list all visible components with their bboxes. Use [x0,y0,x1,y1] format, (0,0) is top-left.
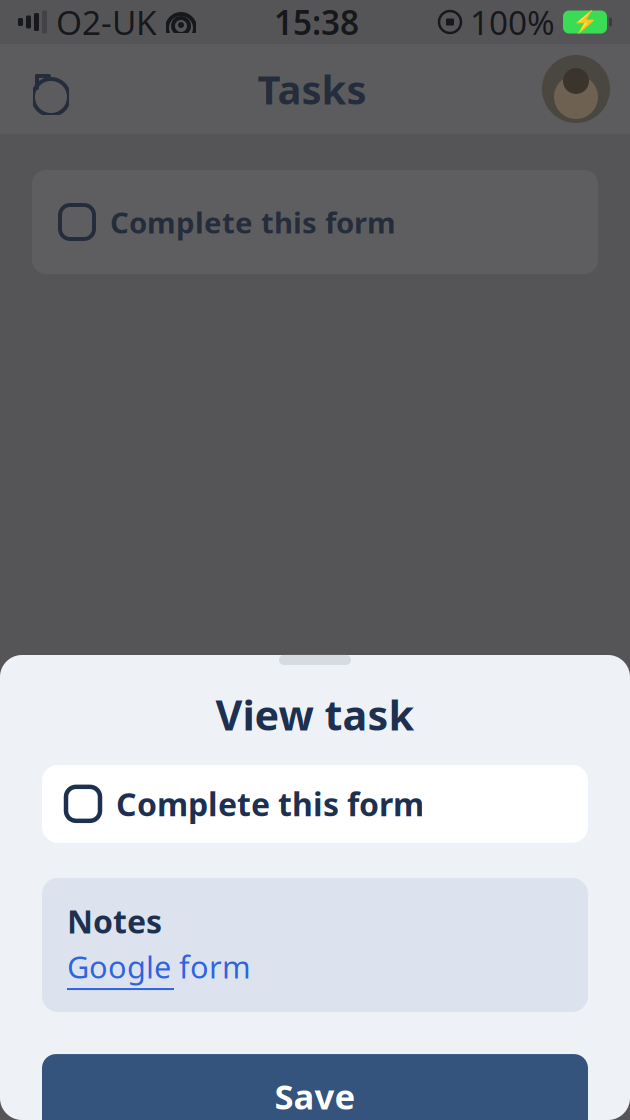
staticText: View task [215,687,414,742]
button[interactable]: Google form [67,946,251,990]
staticText: ⚡ [571,10,598,34]
button[interactable]: Profile [542,55,610,123]
staticText: Google form [67,946,251,987]
staticText: Complete this form [116,783,424,825]
staticText: O2-UK [56,0,157,44]
staticText: Tasks [257,62,366,115]
staticText: Notes [67,900,162,942]
staticText: 15:38 [274,0,359,44]
button[interactable]: Save [42,1054,588,1120]
button[interactable]: Complete this form [42,765,588,843]
staticText: Complete this form [110,202,396,241]
button[interactable]: Back [20,58,82,120]
staticText: 100% [470,0,555,44]
staticText: Save [274,1073,355,1119]
